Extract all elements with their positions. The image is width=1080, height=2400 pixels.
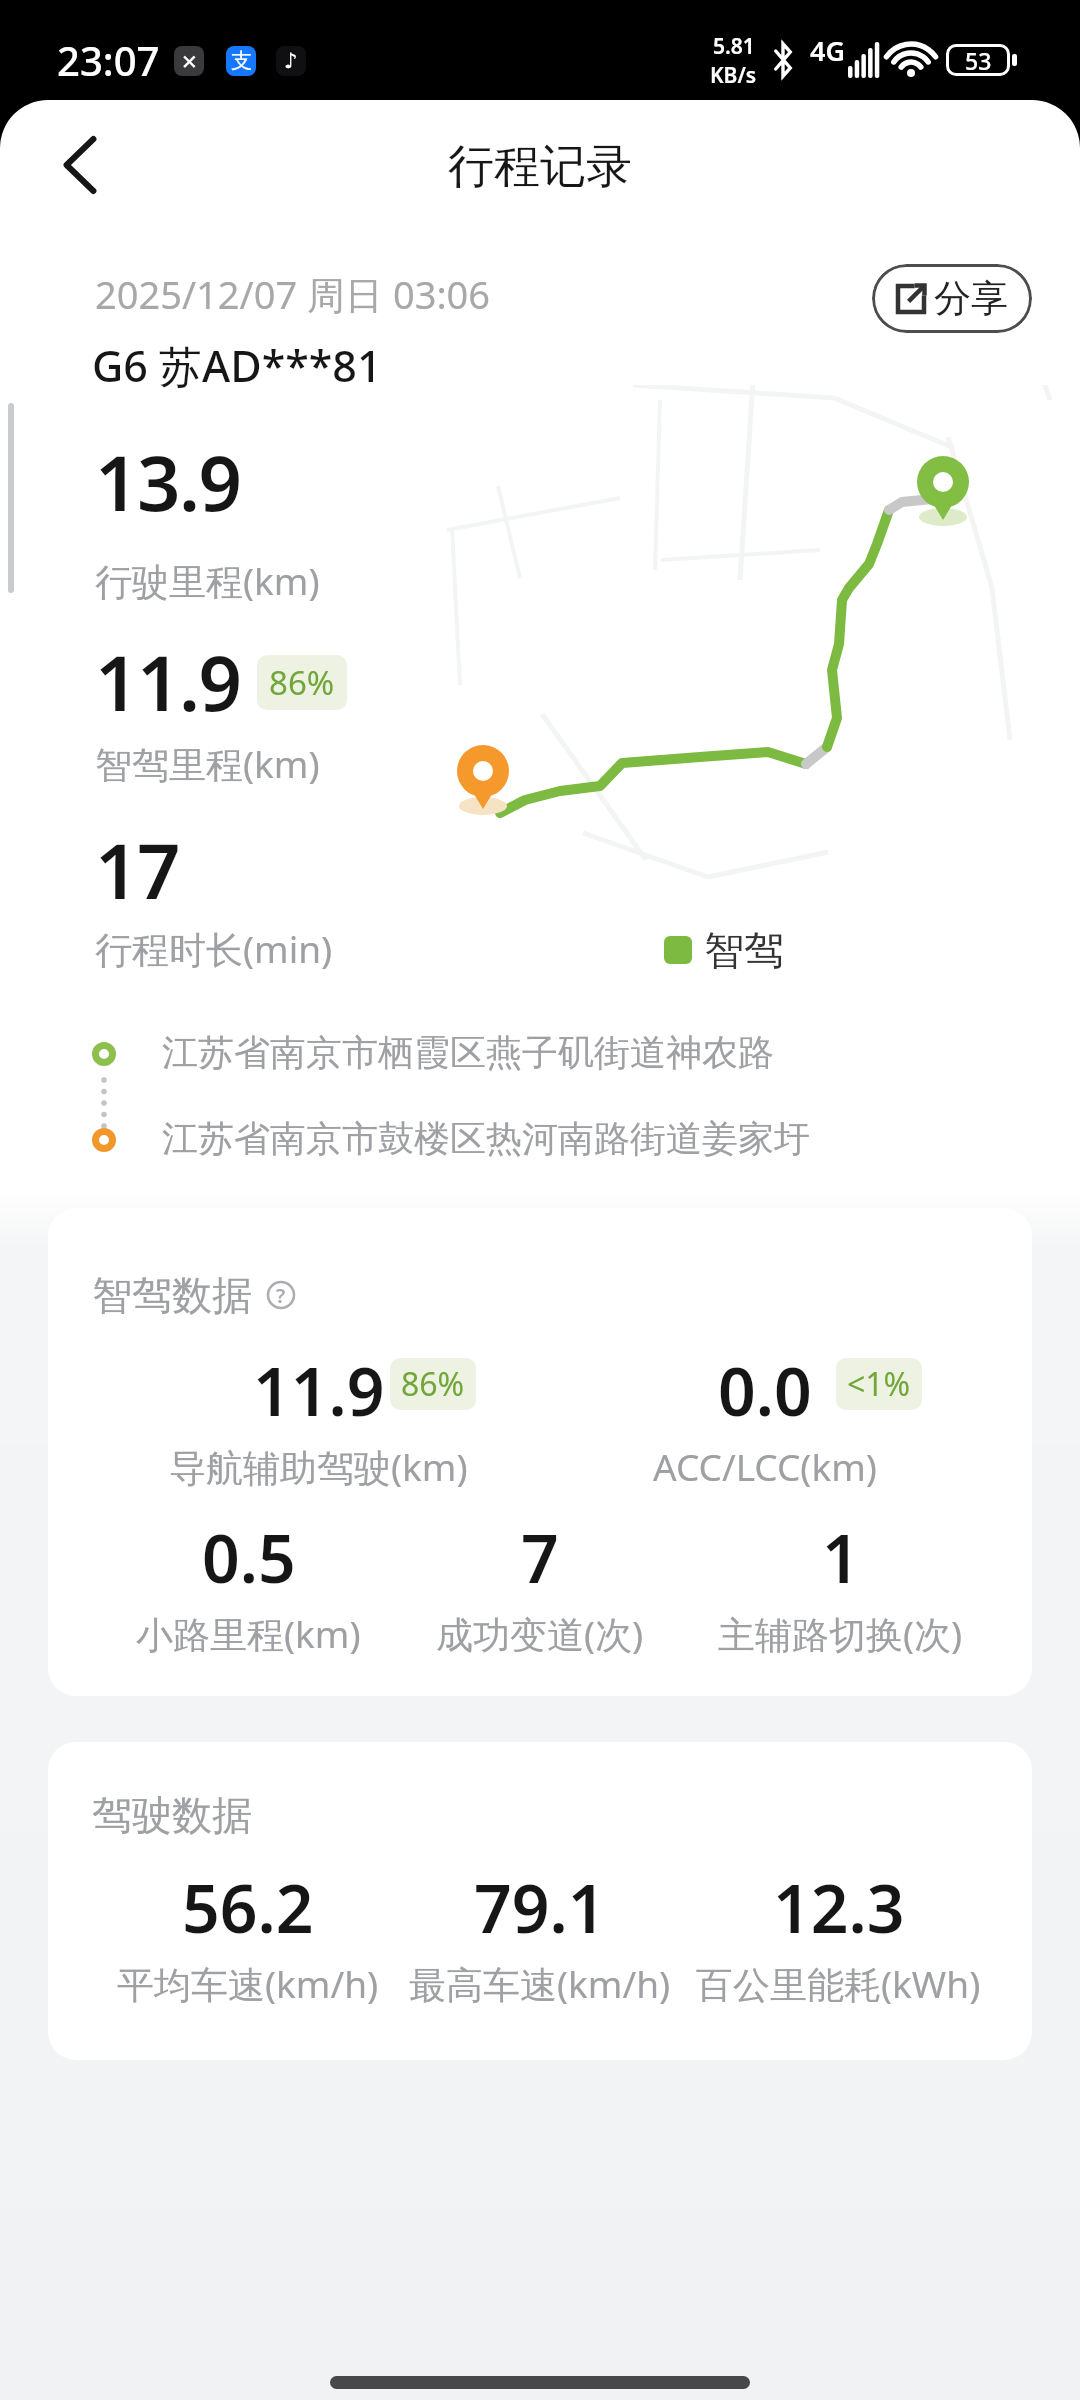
staticText: ✕ [181, 50, 198, 73]
staticText: 11.9 [253, 1345, 385, 1435]
staticText: 平均车速(km/h) [117, 1958, 379, 2009]
staticText: 百公里能耗(kWh) [696, 1958, 981, 2009]
staticText: 86% [269, 660, 335, 705]
staticText: 江苏省南京市鼓楼区热河南路街道姜家圩 [162, 1116, 810, 1161]
staticText: ♪ [284, 49, 298, 73]
staticText: 成功变道(次) [436, 1608, 644, 1659]
staticText: 行驶里程(km) [95, 555, 320, 606]
staticText: 导航辅助驾驶(km) [169, 1441, 468, 1492]
staticText: G6 苏AD***81 [92, 336, 382, 395]
staticText: ? [276, 1282, 286, 1309]
staticText: 79.1 [474, 1862, 606, 1952]
staticText: 主辅路切换(次) [718, 1608, 963, 1659]
staticText: ACC/LCC(km) [653, 1441, 877, 1491]
staticText: 江苏省南京市栖霞区燕子矶街道神农路 [162, 1030, 774, 1075]
staticText: 最高车速(km/h) [409, 1958, 671, 2009]
staticText: 23:07 [57, 33, 160, 87]
staticText: 53 [965, 45, 992, 76]
staticText: 行程时长(min) [95, 923, 333, 974]
staticText: 56.2 [182, 1862, 314, 1952]
staticText: 支 [231, 48, 252, 74]
staticText: 17 [95, 818, 179, 922]
button[interactable] [40, 120, 120, 210]
staticText: 小路里程(km) [136, 1608, 361, 1659]
staticText: 智驾里程(km) [95, 738, 320, 789]
staticText: 0.0 [718, 1345, 812, 1435]
button[interactable]: 分享 [872, 264, 1032, 333]
staticText: 5.81 [713, 32, 755, 61]
staticText: 驾驶数据 [92, 1790, 252, 1840]
staticText: 行程记录 [0, 138, 1080, 196]
staticText: 7 [521, 1512, 559, 1602]
staticText: 13.9 [95, 430, 241, 534]
staticText: 0.5 [202, 1512, 296, 1602]
button[interactable]: ? [266, 1280, 296, 1310]
staticText: KB/s [710, 61, 757, 90]
staticText: <1% [847, 1362, 911, 1406]
staticText: 12.3 [773, 1862, 905, 1952]
staticText: 分享 [934, 275, 1008, 322]
staticText: 11.9 [95, 630, 241, 734]
staticText: 4G [810, 32, 846, 69]
staticText: 智驾数据 [92, 1270, 252, 1320]
staticText: 1 [822, 1512, 860, 1602]
staticText: 2025/12/07 周日 03:06 [95, 268, 491, 320]
staticText: 86% [401, 1362, 465, 1406]
staticText: 智驾 [704, 925, 784, 975]
